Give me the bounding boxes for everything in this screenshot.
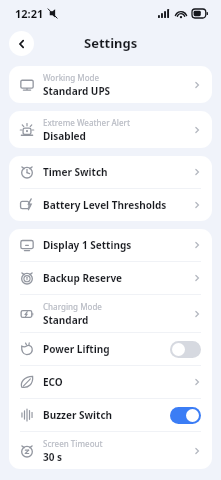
staticText: Disabled: [43, 129, 86, 143]
button[interactable]: Screen Timeout: [9, 432, 212, 469]
staticText: Working Mode: [43, 72, 100, 83]
staticText: Charging Mode: [43, 301, 102, 312]
staticText: Screen Timeout: [43, 438, 103, 449]
button[interactable]: Backup Reserve: [9, 262, 212, 294]
staticText: Extreme Weather Alert: [43, 117, 131, 128]
button[interactable]: Working Mode: [9, 66, 212, 103]
button[interactable]: Timer Switch: [9, 156, 212, 188]
staticText: Settings: [84, 34, 138, 52]
button[interactable]: Charging Mode: [9, 295, 212, 332]
staticText: 12:21: [15, 6, 44, 21]
button[interactable]: Back: [9, 31, 34, 56]
button[interactable]: Power Lifting: [9, 333, 212, 365]
staticText: Battery Level Thresholds: [43, 198, 167, 212]
staticText: ECO: [43, 375, 63, 389]
button[interactable]: Buzzer Switch: [9, 399, 212, 431]
button[interactable]: Toggle on: [170, 407, 201, 424]
staticText: Backup Reserve: [43, 271, 123, 285]
staticText: Standard: [43, 313, 89, 327]
button[interactable]: Display 1 Settings: [9, 229, 212, 261]
button[interactable]: Toggle off: [170, 341, 201, 358]
button[interactable]: Extreme Weather Alert: [9, 111, 212, 148]
staticText: 30 s: [43, 450, 63, 464]
staticText: Timer Switch: [43, 165, 108, 179]
staticText: Display 1 Settings: [43, 238, 132, 252]
staticText: Buzzer Switch: [43, 408, 113, 422]
button[interactable]: ECO: [9, 366, 212, 398]
button[interactable]: Battery Level Thresholds: [9, 189, 212, 221]
staticText: Power Lifting: [43, 342, 110, 356]
staticText: Standard UPS: [43, 84, 111, 98]
